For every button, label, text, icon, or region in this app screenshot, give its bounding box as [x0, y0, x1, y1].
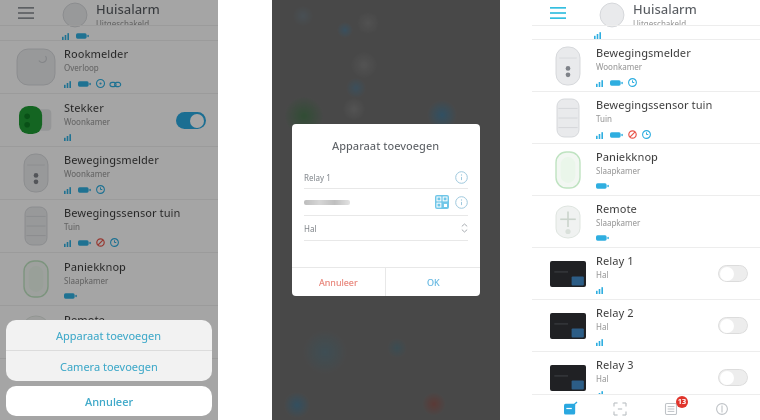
staticText: Uitgeschakeld — [633, 18, 687, 26]
staticText: Hal — [596, 373, 609, 384]
staticText: OK — [427, 276, 440, 288]
staticText: Paniekknop — [596, 149, 658, 164]
button[interactable]: Informatie — [455, 196, 468, 209]
staticText: Slaapkamer — [596, 217, 641, 228]
staticText: Paniekknop — [64, 259, 126, 274]
staticText: Slaapkamer — [64, 275, 109, 286]
button[interactable]: Rookmelder — [0, 41, 218, 93]
staticText: Annuleer — [319, 276, 358, 288]
button[interactable]: Remote — [0, 306, 218, 358]
button[interactable]: Relay 2 — [532, 300, 760, 351]
button[interactable]: Uit — [718, 369, 748, 386]
staticText: Stekker — [64, 100, 104, 115]
button[interactable]: Apparaat toevoegen — [6, 320, 212, 350]
staticText: Overloop — [64, 62, 99, 73]
staticText: Slaapkamer — [596, 165, 641, 176]
button[interactable]: Aan — [176, 112, 206, 129]
button[interactable]: Relay 3 — [532, 352, 760, 403]
button[interactable]: Hal — [304, 216, 468, 240]
staticText: Relay 3 — [596, 357, 634, 372]
staticText: Camera toevoegen — [60, 359, 158, 374]
staticText: Slaapkamer — [64, 328, 109, 339]
button[interactable]: QR-code scannen — [435, 195, 449, 209]
button[interactable]: Scan — [608, 397, 632, 420]
button[interactable]: Paniekknop — [532, 144, 760, 195]
staticText: Bewegingsmelder — [596, 45, 691, 60]
button[interactable]: Relay 1 — [532, 248, 760, 299]
staticText: Hal — [596, 321, 609, 332]
staticText: Bewegingsmelder — [64, 152, 159, 167]
staticText: Relay 1 — [596, 253, 634, 268]
button[interactable]: Menu — [18, 7, 34, 19]
button[interactable]: Menu — [550, 7, 566, 19]
staticText: Annuleer — [85, 394, 134, 409]
button[interactable]: Uit — [718, 317, 748, 334]
staticText: Rookmelder — [64, 46, 129, 61]
button[interactable]: Meldingen, 13 nieuwe — [658, 397, 684, 420]
button[interactable]: Uit — [718, 265, 748, 282]
button[interactable]: Bewegingsmelder — [532, 40, 760, 91]
staticText: Apparaat toevoegen — [332, 138, 440, 153]
staticText: Relay 2 — [596, 305, 634, 320]
staticText: Woonkamer — [64, 168, 110, 179]
button[interactable]: Bewegingssensor tuin — [0, 200, 218, 252]
staticText: Uitgeschakeld — [96, 18, 150, 26]
button[interactable]: Bewegingssensor tuin — [532, 92, 760, 143]
button[interactable]: Stekker — [0, 94, 218, 146]
button[interactable]: QR-code scannen — [304, 189, 468, 215]
button[interactable]: Bewegingsmelder — [0, 147, 218, 199]
staticText: Bewegingssensor tuin — [596, 97, 713, 112]
staticText: Bewegingssensor tuin — [64, 205, 181, 220]
button[interactable]: Apparaten — [558, 397, 582, 420]
staticText: 13 — [678, 397, 687, 407]
button[interactable]: Annuleer — [6, 386, 212, 416]
button[interactable]: Informatie — [455, 171, 468, 184]
button[interactable]: Paniekknop — [0, 253, 218, 305]
button[interactable]: Annuleer — [292, 268, 385, 296]
staticText: Hal — [596, 269, 609, 280]
staticText: Hal — [304, 223, 461, 234]
staticText: Woonkamer — [596, 61, 642, 72]
staticText: Apparaat toevoegen — [56, 328, 162, 343]
button[interactable]: Remote — [532, 196, 760, 247]
staticText: Tuin — [596, 113, 612, 124]
staticText: Remote — [596, 201, 637, 216]
staticText: Huisalarm — [633, 0, 697, 18]
button[interactable]: Camera toevoegen — [6, 351, 212, 381]
staticText: Relay 1 — [304, 172, 455, 183]
button[interactable]: Profiel — [710, 397, 734, 420]
staticText: Woonkamer — [64, 116, 110, 127]
staticText: Tuin — [64, 221, 80, 232]
button[interactable]: Relay 1 — [304, 166, 468, 188]
button[interactable]: OK — [386, 268, 480, 296]
staticText: Remote — [64, 312, 105, 327]
staticText: Huisalarm — [96, 0, 160, 18]
